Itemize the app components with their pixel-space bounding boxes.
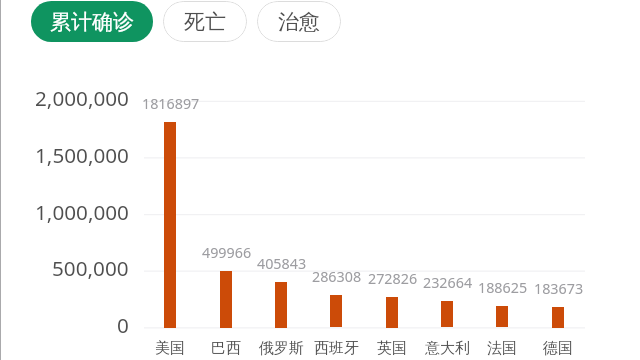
button[interactable]: 俄罗斯 405843 xyxy=(253,252,308,354)
button[interactable]: 法国 188625 xyxy=(475,276,530,353)
staticText: 1,000,000 xyxy=(35,198,129,226)
staticText: 232664 xyxy=(423,273,473,292)
staticText: 法国 xyxy=(487,339,517,358)
button[interactable]: 巴西 499966 xyxy=(198,241,253,354)
button[interactable]: 美国 1816897 xyxy=(143,92,198,354)
button[interactable]: 英国 272826 xyxy=(364,267,419,354)
staticText: 西班牙 xyxy=(314,339,359,358)
staticText: 2,000,000 xyxy=(35,84,129,112)
staticText: 1,500,000 xyxy=(35,141,129,169)
staticText: 美国 xyxy=(155,339,185,358)
staticText: 286308 xyxy=(312,267,362,286)
staticText: 累计确诊 xyxy=(50,9,134,35)
staticText: 183673 xyxy=(534,279,584,298)
button[interactable]: 意大利 232664 xyxy=(419,271,474,353)
staticText: 0 xyxy=(117,311,129,339)
button[interactable]: 西班牙 286308 xyxy=(309,265,364,353)
staticText: 405843 xyxy=(257,254,307,273)
staticText: 188625 xyxy=(478,278,528,297)
staticText: 500,000 xyxy=(52,254,129,282)
staticText: 1816897 xyxy=(142,94,200,113)
staticText: 德国 xyxy=(543,339,573,358)
staticText: 俄罗斯 xyxy=(259,339,304,358)
staticText: 死亡 xyxy=(184,9,226,35)
button[interactable]: 死亡 xyxy=(163,1,247,42)
staticText: 英国 xyxy=(377,339,407,358)
button[interactable]: 德国 183673 xyxy=(530,277,585,354)
button[interactable]: 治愈 xyxy=(257,1,341,42)
staticText: 巴西 xyxy=(211,339,241,358)
staticText: 272826 xyxy=(368,269,418,288)
button[interactable]: 累计确诊 xyxy=(31,1,153,42)
staticText: 499966 xyxy=(202,243,252,262)
staticText: 意大利 xyxy=(425,339,470,358)
staticText: 治愈 xyxy=(278,9,320,35)
